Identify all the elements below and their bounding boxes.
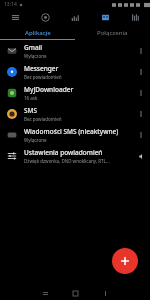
button[interactable]: Dodaj xyxy=(112,248,138,274)
button[interactable]: Ekran główny xyxy=(60,286,90,300)
staticText: Gmail xyxy=(24,43,43,52)
staticText: 16 ask xyxy=(24,95,38,101)
button[interactable]: Wstecz xyxy=(90,286,120,300)
button[interactable]: Statystyki xyxy=(60,9,90,26)
button[interactable]: Więcej opcji xyxy=(134,128,148,142)
staticText: Messenger xyxy=(24,64,59,73)
button[interactable]: Głośność xyxy=(134,149,148,163)
button[interactable]: Gmail xyxy=(0,40,150,61)
staticText: MyJDownloader xyxy=(24,85,74,94)
button[interactable]: Wiadomości SMS (nieaktywne) xyxy=(0,124,150,145)
staticText: Wyłączone xyxy=(24,137,47,143)
button[interactable]: Powiadomienia xyxy=(90,9,120,26)
staticText: Wiadomości SMS (nieaktywne) xyxy=(24,127,119,136)
button[interactable]: Aplikacje xyxy=(0,26,75,39)
staticText: Bez powiadomień xyxy=(24,74,62,80)
staticText: SMS xyxy=(24,106,38,115)
staticText: 13:14 xyxy=(4,1,17,8)
button[interactable]: Ostatnie xyxy=(30,286,60,300)
button[interactable]: Więcej opcji xyxy=(134,44,148,58)
button[interactable]: Menu xyxy=(0,9,30,26)
button[interactable]: Messenger xyxy=(0,61,150,82)
button[interactable]: Więcej opcji xyxy=(134,86,148,100)
button[interactable]: Połączenia xyxy=(75,26,150,39)
staticText: Dźwięk dzwonka, DND wnoklicany, RTL... xyxy=(24,158,110,164)
staticText: Bez powiadomień xyxy=(24,116,62,122)
button[interactable]: Ustawienia powiadomień xyxy=(0,145,150,166)
staticText: Ustawienia powiadomień xyxy=(24,148,103,157)
button[interactable]: Home xyxy=(30,9,60,26)
button[interactable]: Więcej opcji xyxy=(134,65,148,79)
button[interactable]: Filtry xyxy=(120,9,150,26)
button[interactable]: Więcej opcji xyxy=(134,107,148,121)
button[interactable]: MyJDownloader xyxy=(0,82,150,103)
staticText: Połączenia xyxy=(97,29,128,37)
button[interactable]: SMS xyxy=(0,103,150,124)
staticText: Wyłączone xyxy=(24,53,47,59)
staticText: Aplikacje xyxy=(25,29,51,37)
